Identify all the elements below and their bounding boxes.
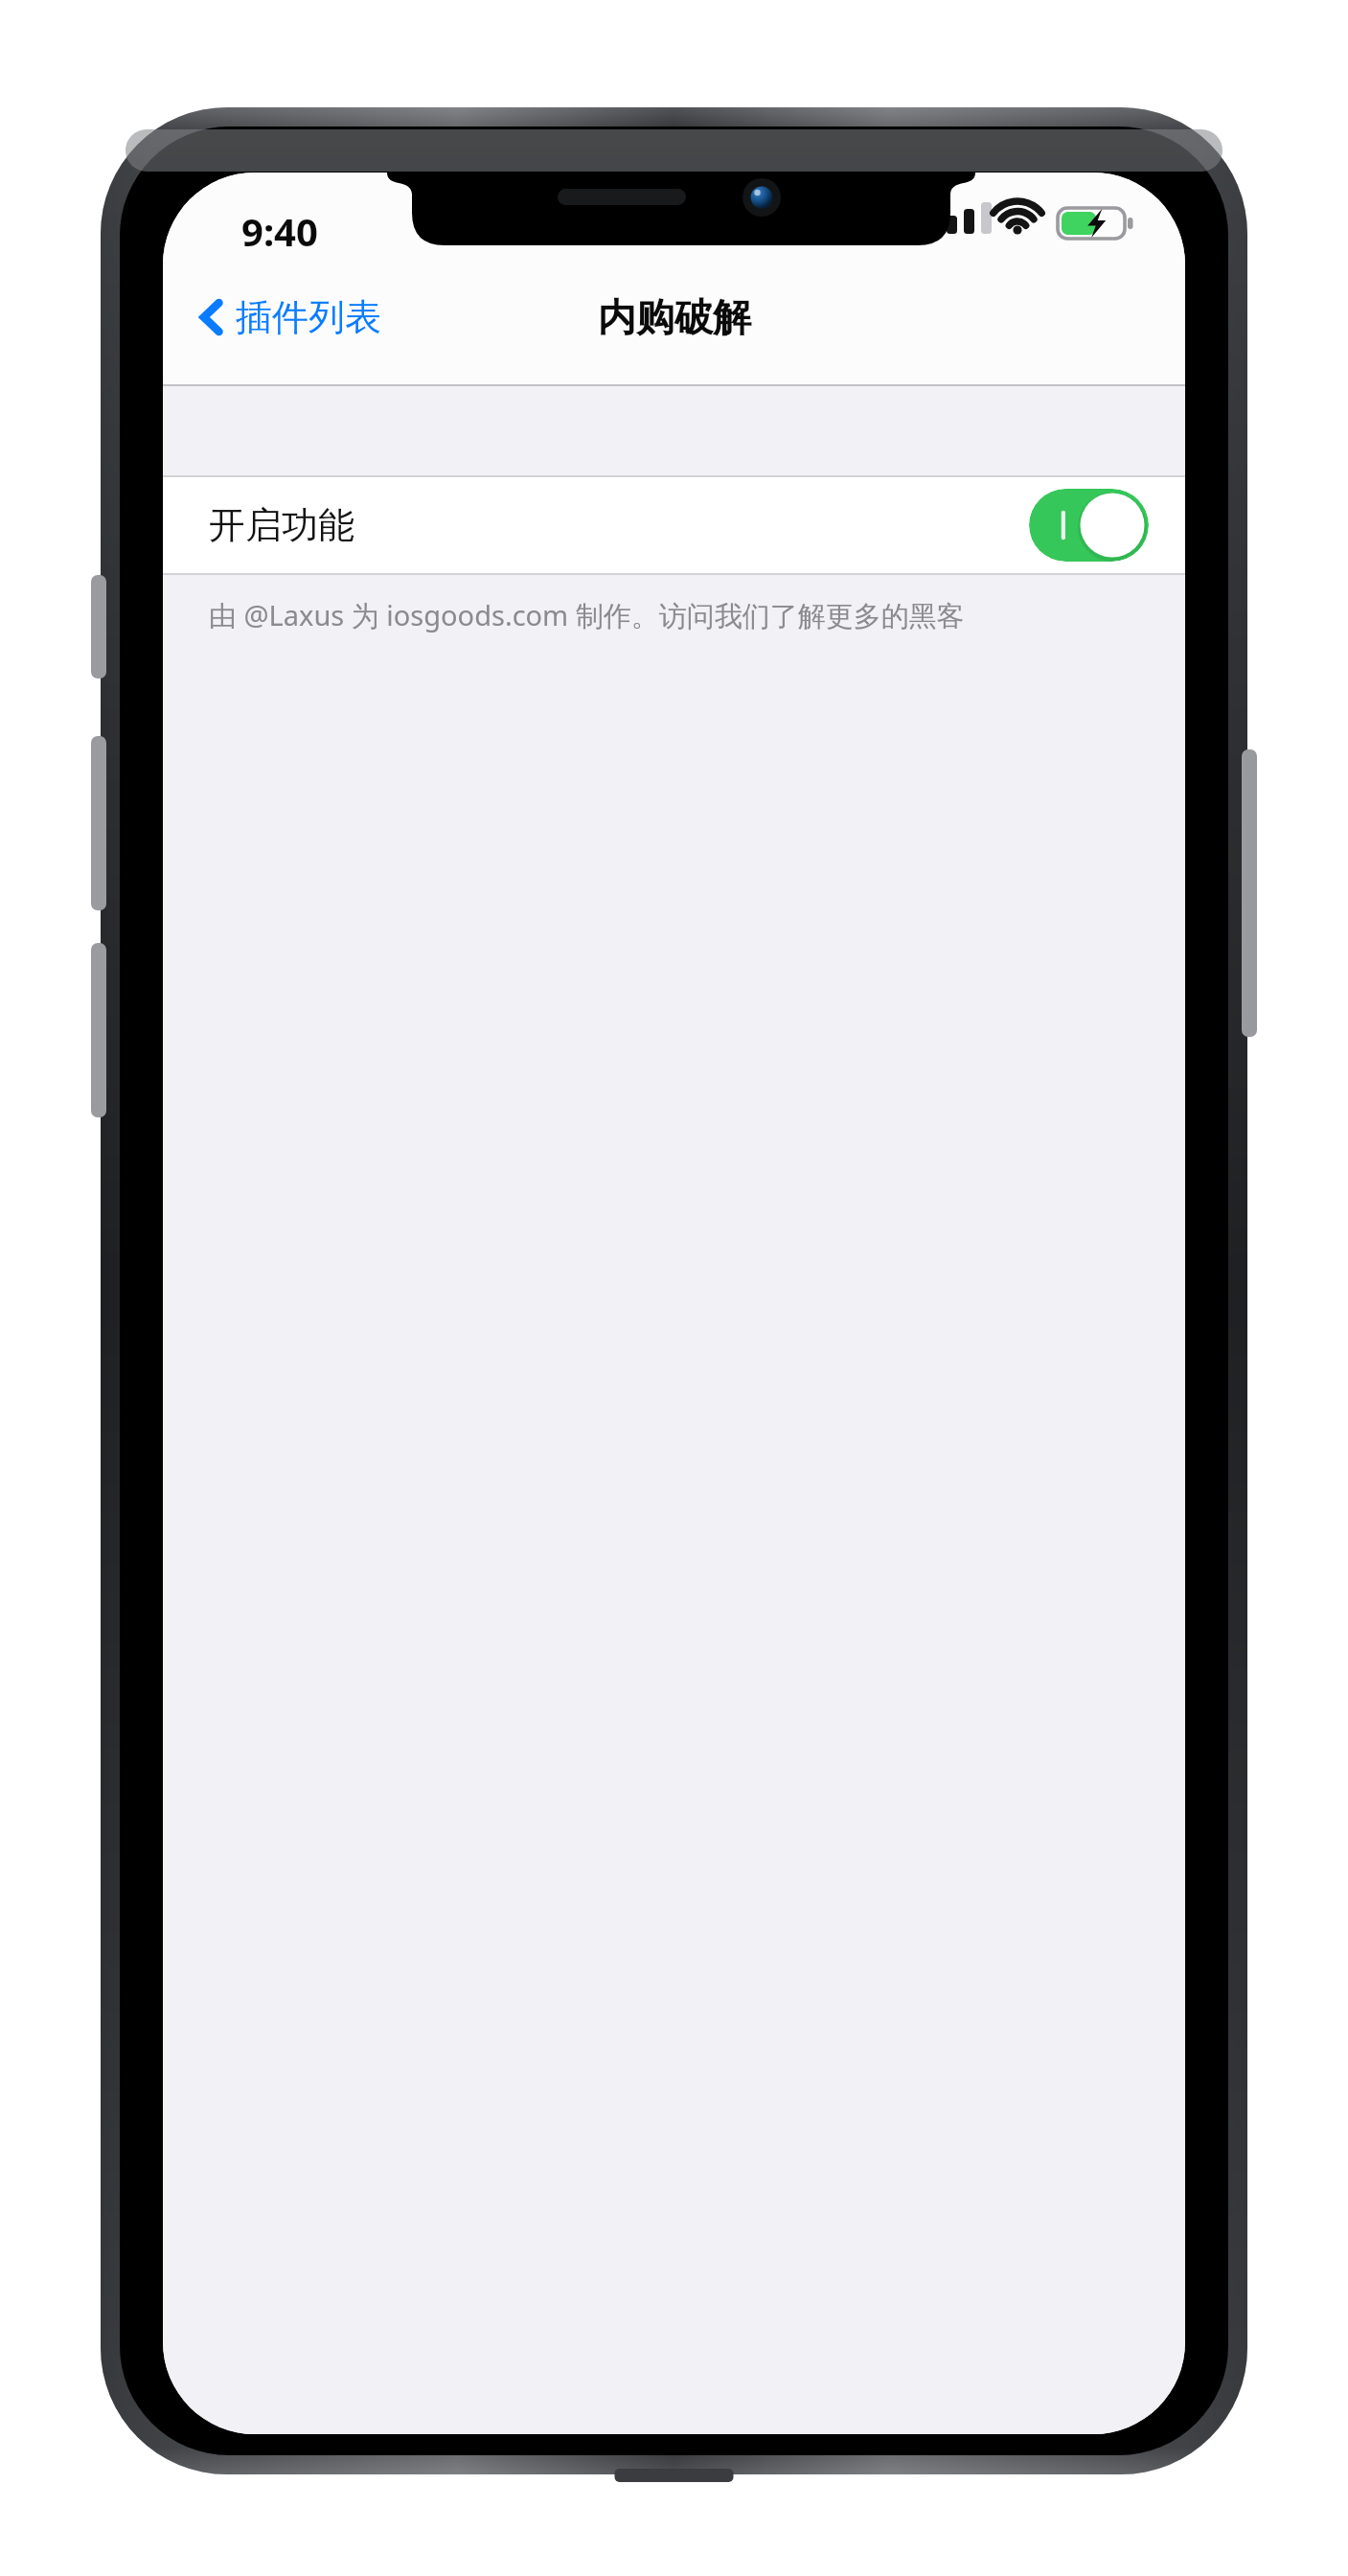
staticText: 插件列表 bbox=[236, 294, 381, 340]
staticText: 9:40 bbox=[241, 205, 318, 257]
button[interactable]: 开启功能 bbox=[1029, 489, 1149, 562]
staticText: 内购破解 bbox=[598, 293, 751, 341]
staticText: 由 @Laxus 为 iosgoods.com 制作。访问我们了解更多的黑客 bbox=[209, 596, 965, 634]
button[interactable]: 插件列表 bbox=[186, 282, 391, 353]
staticText: 开启功能 bbox=[209, 502, 354, 548]
button[interactable]: 开启功能 bbox=[163, 477, 1185, 573]
